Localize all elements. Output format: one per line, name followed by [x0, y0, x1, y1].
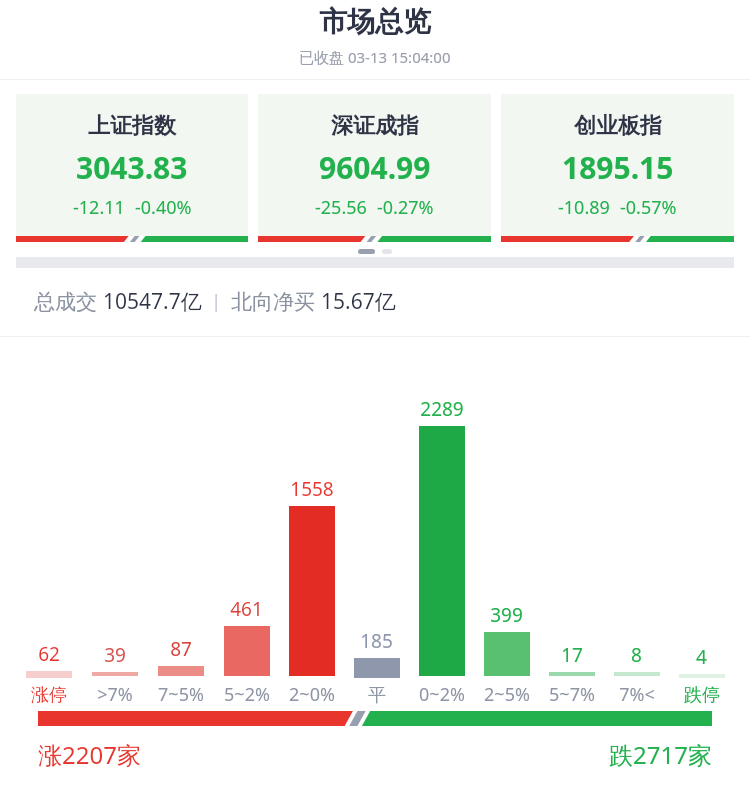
button[interactable]: 62: [0, 337, 750, 711]
button[interactable]: 创业板指: [501, 94, 734, 242]
staticText: 10547.7亿: [103, 287, 202, 316]
staticText: 5~2%: [224, 682, 270, 707]
staticText: |: [202, 289, 231, 314]
button[interactable]: 涨2207家: [0, 711, 750, 789]
staticText: 8: [631, 642, 642, 668]
staticText: 涨2207家: [38, 738, 141, 771]
staticText: 2~5%: [484, 682, 530, 707]
staticText: 62: [38, 641, 60, 667]
staticText: 3043.83: [76, 147, 188, 188]
staticText: 创业板指: [574, 112, 662, 140]
staticText: 17: [561, 642, 583, 668]
staticText: 7~5%: [158, 682, 204, 707]
staticText: 上证指数: [88, 112, 176, 140]
staticText: -25.56: [315, 195, 367, 220]
staticText: 深证成指: [331, 112, 419, 140]
staticText: 平: [368, 684, 386, 707]
staticText: -0.40%: [135, 195, 192, 220]
staticText: 1895.15: [562, 147, 674, 188]
staticText: -10.89: [558, 195, 610, 220]
staticText: >7%: [97, 682, 133, 707]
button[interactable]: 总成交: [0, 285, 750, 318]
staticText: 跌停: [684, 684, 720, 707]
staticText: 北向净买: [231, 287, 321, 316]
staticText: 0~2%: [419, 682, 465, 707]
staticText: 2~0%: [289, 682, 335, 707]
staticText: 2289: [420, 396, 464, 422]
staticText: 185: [360, 628, 393, 654]
staticText: 跌2717家: [609, 738, 712, 771]
staticText: 461: [230, 596, 263, 622]
staticText: 39: [104, 642, 126, 668]
staticText: 已收盘 03-13 15:04:00: [299, 47, 451, 67]
staticText: 9604.99: [319, 147, 431, 188]
staticText: 15.67亿: [321, 287, 396, 316]
staticText: 市场总览: [319, 4, 431, 39]
staticText: 5~7%: [549, 682, 595, 707]
staticText: 399: [490, 602, 523, 628]
staticText: 7%<: [619, 682, 655, 707]
staticText: -0.27%: [377, 195, 434, 220]
staticText: 1558: [290, 476, 334, 502]
staticText: 涨停: [31, 684, 67, 707]
staticText: -0.57%: [620, 195, 677, 220]
staticText: 4: [696, 644, 707, 670]
button[interactable]: 上证指数: [16, 94, 248, 242]
staticText: -12.11: [73, 195, 125, 220]
staticText: 87: [170, 636, 192, 662]
staticText: 总成交: [34, 287, 103, 316]
button[interactable]: 深证成指: [258, 94, 491, 242]
